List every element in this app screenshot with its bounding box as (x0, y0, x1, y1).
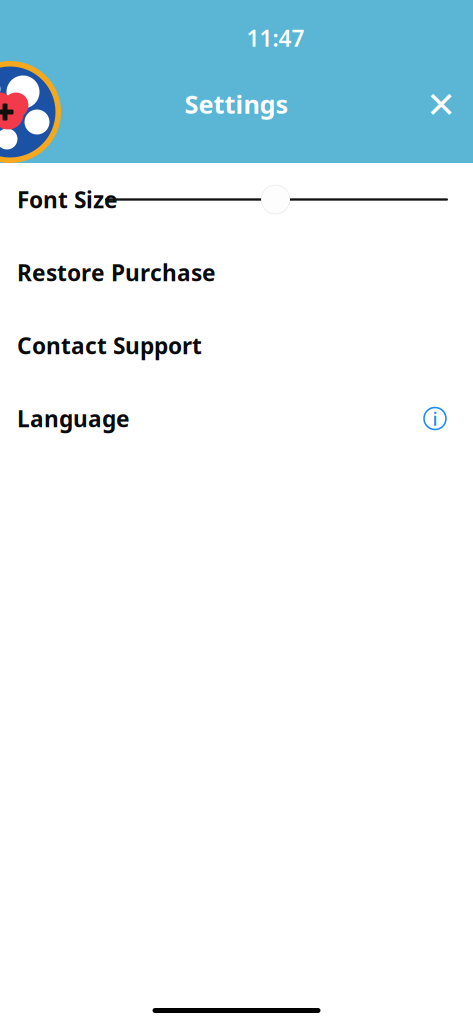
button[interactable]: Font Size (0, 163, 473, 236)
button[interactable]: Close (415, 79, 467, 131)
staticText: Language (17, 403, 130, 433)
button[interactable]: Language (0, 382, 473, 455)
button[interactable]: Contact Support (0, 309, 473, 382)
staticText: Settings (184, 87, 288, 121)
staticText: Font Size (17, 184, 118, 214)
staticText: i (432, 406, 437, 431)
button[interactable]: Restore Purchase (0, 236, 473, 309)
staticText: Contact Support (17, 330, 202, 360)
staticText: 11:47 (246, 23, 304, 53)
staticText: ✕ (426, 85, 456, 125)
staticText: Restore Purchase (17, 257, 216, 287)
